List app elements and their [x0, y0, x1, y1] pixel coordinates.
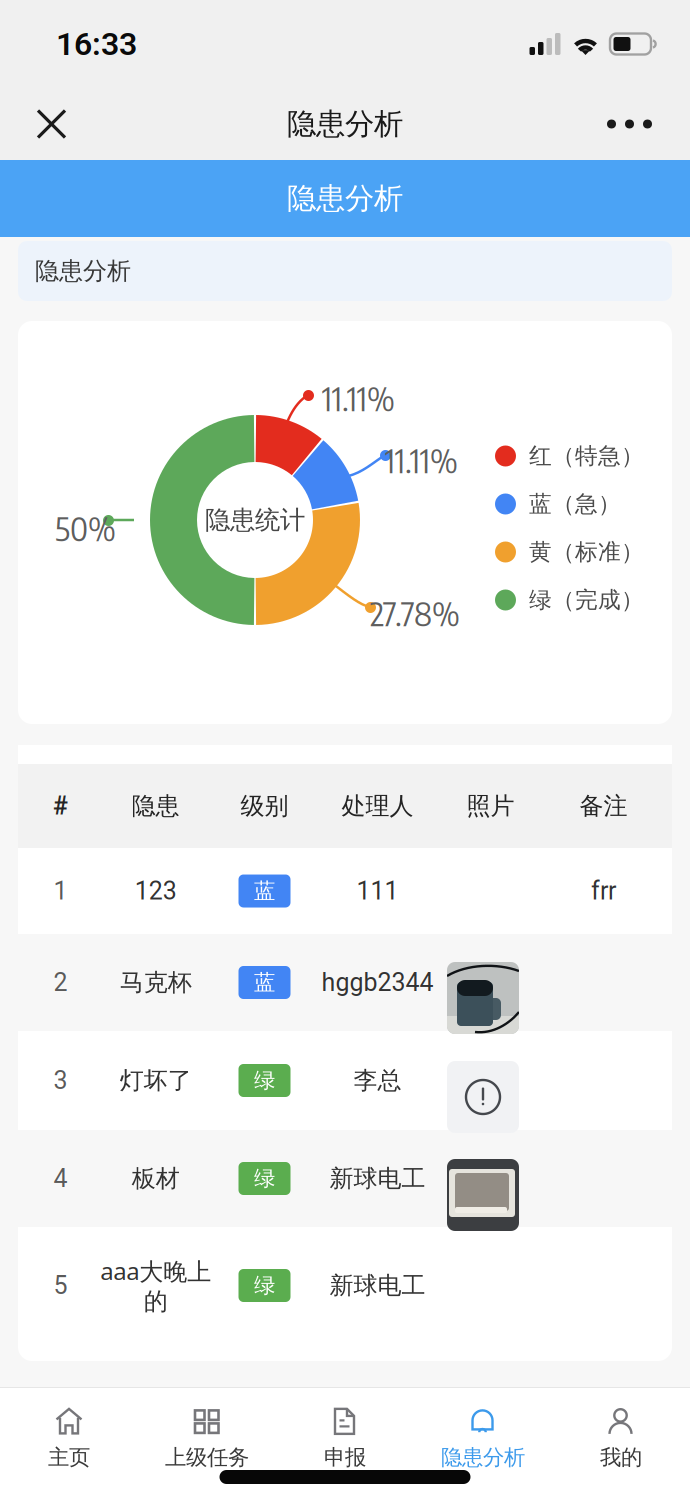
button[interactable]: 关闭: [22, 94, 81, 153]
staticText: 蓝: [254, 969, 275, 996]
staticText: 绿（完成）: [529, 586, 644, 614]
staticText: 备注: [579, 791, 627, 821]
button[interactable]: 上级任务: [138, 1388, 276, 1480]
staticText: 16:33: [56, 25, 137, 63]
button[interactable]: 2: [18, 934, 672, 1031]
staticText: 新球电工: [329, 1164, 425, 1193]
button[interactable]: 主页: [0, 1388, 138, 1480]
staticText: 灯坏了: [119, 1066, 191, 1095]
staticText: 马克杯: [119, 968, 191, 997]
staticText: 蓝（急）: [529, 490, 621, 518]
staticText: 隐患分析: [287, 180, 403, 216]
button[interactable]: 1: [18, 848, 672, 934]
staticText: 50%: [55, 507, 116, 549]
staticText: 板材: [131, 1164, 179, 1193]
staticText: 11.11%: [385, 439, 458, 481]
staticText: 我的: [600, 1444, 642, 1471]
staticText: 申报: [324, 1444, 366, 1471]
button[interactable]: 申报: [276, 1388, 414, 1480]
staticText: 隐患: [131, 791, 179, 821]
staticText: 3: [53, 1066, 67, 1095]
staticText: 照片: [466, 791, 514, 821]
staticText: aaa大晚上 的: [100, 1255, 211, 1316]
staticText: 111: [356, 876, 398, 906]
button[interactable]: 隐患分析: [414, 1388, 552, 1480]
staticText: 隐患分析: [441, 1444, 525, 1471]
staticText: 蓝: [254, 878, 275, 904]
staticText: 1: [53, 876, 67, 906]
staticText: 5: [53, 1271, 67, 1300]
staticText: 11.11%: [322, 377, 395, 419]
staticText: 李总: [353, 1066, 401, 1095]
staticText: 隐患分析: [35, 256, 131, 286]
staticText: 红（特急）: [529, 442, 644, 470]
staticText: 级别: [240, 791, 288, 821]
button[interactable]: 4: [18, 1130, 672, 1227]
staticText: 黄（标准）: [529, 538, 644, 566]
staticText: hggb2344: [321, 968, 433, 997]
staticText: 2: [53, 968, 67, 997]
staticText: 隐患分析: [287, 106, 403, 142]
button[interactable]: 3: [18, 1031, 672, 1130]
staticText: 主页: [48, 1444, 90, 1471]
staticText: 绿: [254, 1272, 275, 1299]
staticText: 处理人: [341, 791, 413, 821]
staticText: frr: [591, 876, 616, 906]
staticText: 上级任务: [165, 1444, 249, 1471]
button[interactable]: 5: [18, 1227, 672, 1344]
staticText: 绿: [254, 1067, 275, 1094]
button[interactable]: 我的: [552, 1388, 690, 1480]
staticText: 4: [53, 1164, 67, 1193]
staticText: #: [53, 791, 68, 821]
staticText: 123: [134, 876, 176, 906]
button[interactable]: 更多: [591, 94, 668, 153]
staticText: 新球电工: [329, 1271, 425, 1300]
staticText: 绿: [254, 1165, 275, 1192]
staticText: 27.78%: [370, 592, 460, 634]
staticText: 隐患统计: [205, 504, 305, 535]
